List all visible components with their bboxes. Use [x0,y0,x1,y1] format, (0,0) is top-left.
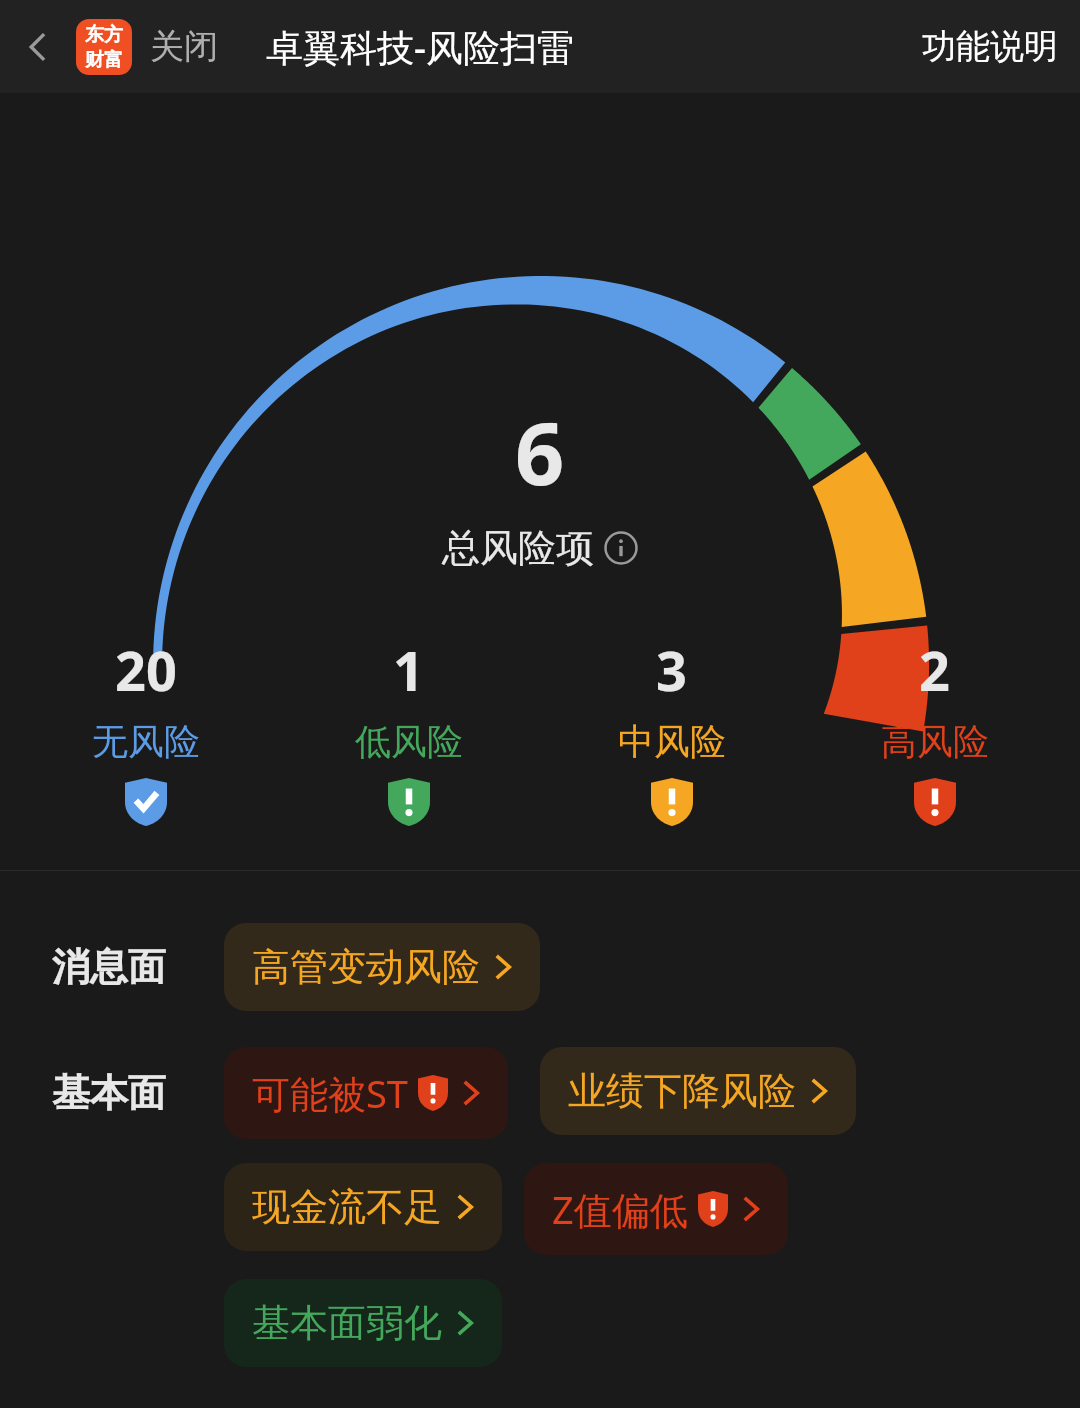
button[interactable]: 可能被ST [224,1047,508,1139]
button[interactable]: 现金流不足 [224,1163,502,1251]
staticText: 可能被ST [252,1067,408,1119]
staticText: 无风险 [92,719,200,764]
staticText: 基本面 [52,1069,166,1117]
staticText: 卓翼科技-风险扫雷 [266,21,574,72]
staticText: 3 [656,633,687,707]
button[interactable]: 1 [277,633,540,826]
button[interactable]: 返回 [0,0,76,93]
button[interactable]: 2 [803,633,1066,826]
button[interactable]: 基本面弱化 [224,1279,502,1367]
staticText: 总风险项 [442,524,594,572]
button[interactable]: 3 [540,633,803,826]
button[interactable]: Z值偏低 [524,1163,788,1255]
button[interactable]: 20 [14,633,277,826]
staticText: 低风险 [355,719,463,764]
staticText: 高风险 [881,719,989,764]
staticText: 财富 [85,48,123,72]
button[interactable]: 功能说明 [922,25,1080,68]
staticText: 中风险 [618,719,726,764]
button[interactable]: 东方财富 [76,19,132,75]
staticText: 高管变动风险 [252,943,480,991]
staticText: 业绩下降风险 [568,1067,796,1115]
staticText: 消息面 [52,943,166,991]
button[interactable]: 关闭 [146,25,222,68]
staticText: 基本面弱化 [252,1299,442,1347]
staticText: 功能说明 [922,25,1058,68]
staticText: Z值偏低 [552,1183,688,1235]
staticText: 关闭 [150,25,218,68]
staticText: 2 [919,633,950,707]
button[interactable]: 高管变动风险 [224,923,540,1011]
staticText: 现金流不足 [252,1183,442,1231]
button[interactable]: 说明 [604,531,638,565]
staticText: 6 [515,393,565,510]
button[interactable]: 业绩下降风险 [540,1047,856,1135]
staticText: 20 [115,633,177,707]
staticText: 1 [393,633,424,707]
staticText: 东方 [85,23,123,47]
